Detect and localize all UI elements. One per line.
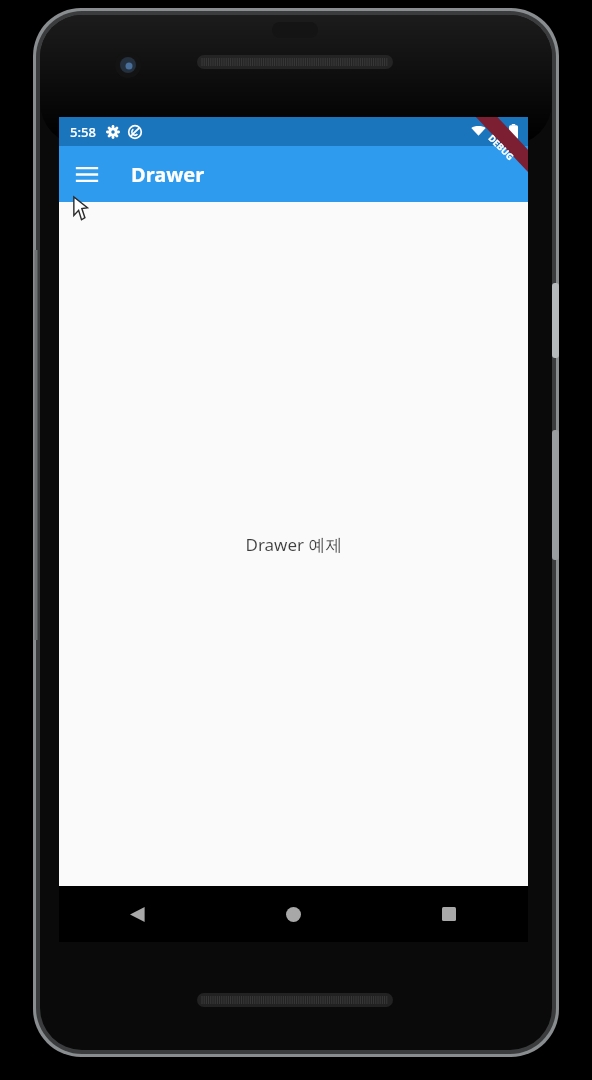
button[interactable]: Back	[59, 886, 215, 942]
staticText: Drawer 예제	[245, 533, 343, 556]
staticText: Drawer	[131, 161, 205, 188]
staticText: 5:58	[70, 123, 96, 141]
button[interactable]: Recent apps	[371, 886, 527, 942]
button[interactable]: Open navigation drawer	[63, 150, 111, 198]
button[interactable]: Home	[215, 886, 371, 942]
staticText: DEBUG	[486, 132, 517, 162]
